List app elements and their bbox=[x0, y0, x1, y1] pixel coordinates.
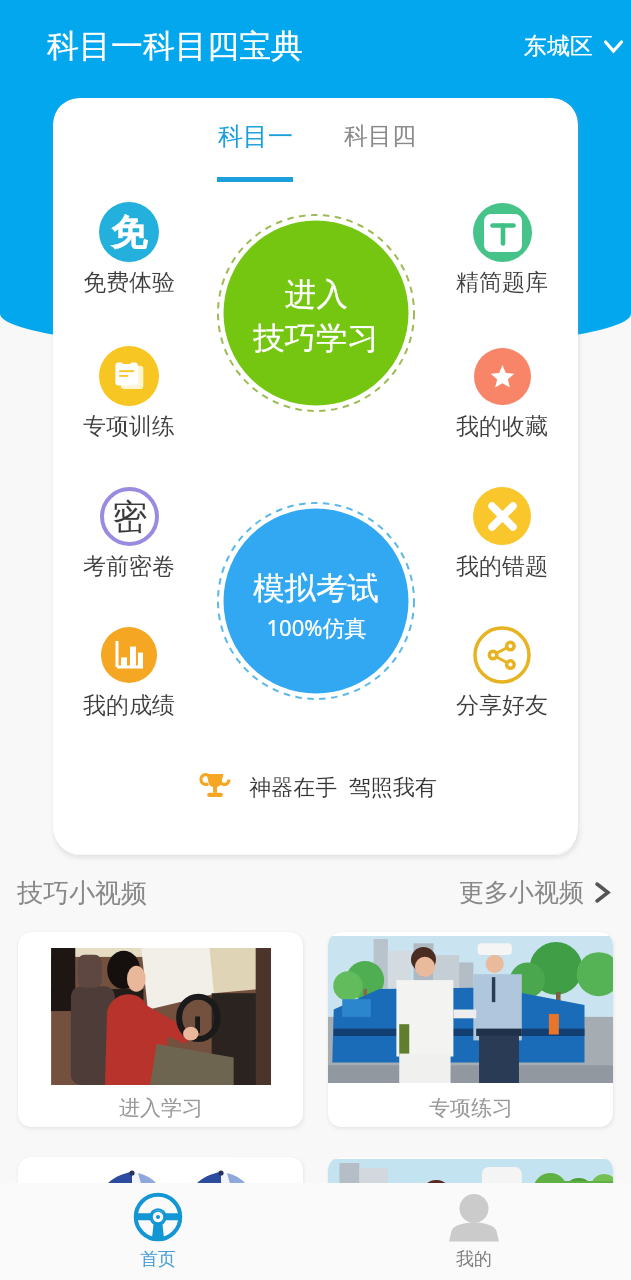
button[interactable]: 我的收藏 bbox=[427, 346, 577, 451]
staticText: 进入 bbox=[285, 275, 348, 315]
button[interactable]: 我的 bbox=[394, 1183, 554, 1280]
staticText: 科目一 bbox=[218, 121, 293, 152]
button[interactable] bbox=[328, 1157, 613, 1280]
staticText: 科目一科目四宝典 bbox=[47, 26, 303, 66]
staticText: 考前密卷 bbox=[83, 552, 175, 581]
button[interactable]: 密 bbox=[54, 486, 204, 591]
staticText: 我的 bbox=[456, 1248, 492, 1271]
button[interactable]: 科目四 bbox=[326, 121, 433, 163]
other: Choose city bbox=[604, 40, 623, 53]
staticText: 进入学习 bbox=[119, 1095, 203, 1121]
staticText: 精简题库 bbox=[456, 268, 548, 297]
staticText: 100%仿真 bbox=[266, 612, 367, 642]
staticText: 专项练习 bbox=[429, 1095, 513, 1121]
staticText: 密 bbox=[112, 495, 147, 539]
button[interactable]: 东城区 bbox=[524, 32, 623, 61]
button[interactable]: 模拟考试 bbox=[217, 502, 415, 700]
staticText: 更多小视频 bbox=[459, 877, 584, 908]
button[interactable] bbox=[18, 1157, 303, 1280]
staticText: 我的收藏 bbox=[456, 412, 548, 441]
button[interactable]: 神器在手 驾照我有 bbox=[201, 771, 437, 801]
button[interactable]: 专项练习 bbox=[328, 932, 613, 1127]
button[interactable]: 首页 bbox=[78, 1183, 238, 1280]
button[interactable]: 免 bbox=[54, 202, 204, 307]
staticText: 专项训练 bbox=[83, 412, 175, 441]
button[interactable]: 我的错题 bbox=[427, 486, 577, 591]
button[interactable]: 专项训练 bbox=[54, 346, 204, 451]
staticText: 分享好友 bbox=[456, 691, 548, 720]
staticText: 免费体验 bbox=[83, 268, 175, 297]
staticText: 神器在手 驾照我有 bbox=[249, 771, 437, 801]
button[interactable]: 我的成绩 bbox=[54, 625, 204, 730]
button[interactable]: 科目一 bbox=[201, 121, 308, 183]
button[interactable]: 精简题库 bbox=[427, 202, 577, 307]
button[interactable]: 进入 bbox=[217, 214, 415, 412]
staticText: 东城区 bbox=[524, 32, 593, 61]
staticText: 技巧小视频 bbox=[17, 877, 147, 910]
button[interactable]: 更多小视频 bbox=[459, 877, 610, 908]
button[interactable]: 分享好友 bbox=[427, 625, 577, 730]
button[interactable]: 进入学习 bbox=[18, 932, 303, 1127]
staticText: 首页 bbox=[140, 1248, 176, 1271]
staticText: 科目四 bbox=[344, 121, 416, 151]
staticText: 模拟考试 bbox=[253, 569, 379, 609]
staticText: 技巧学习 bbox=[253, 319, 379, 359]
staticText: 我的成绩 bbox=[83, 691, 175, 720]
staticText: 免 bbox=[111, 210, 147, 255]
staticText: 我的错题 bbox=[456, 552, 548, 581]
